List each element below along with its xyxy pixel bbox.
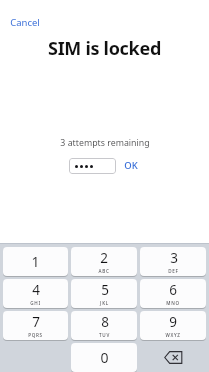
button[interactable]: 6 — [140, 279, 206, 308]
button[interactable]: 8 — [71, 311, 137, 340]
staticText: 8 — [101, 313, 109, 331]
staticText: OK — [124, 159, 138, 172]
staticText: SIM is locked — [48, 36, 161, 61]
button[interactable]: 9 — [140, 311, 206, 340]
button[interactable]: Backspace — [140, 343, 206, 372]
staticText: ABC — [98, 268, 110, 274]
staticText: Cancel — [10, 16, 40, 29]
button[interactable]: 4 — [3, 279, 68, 308]
button[interactable]: 1 — [3, 247, 68, 276]
button[interactable] — [69, 158, 116, 174]
button[interactable]: 0 — [71, 343, 137, 372]
staticText: 3 — [170, 249, 178, 267]
staticText: DEF — [168, 268, 179, 274]
staticText: WXYZ — [165, 332, 181, 338]
staticText: 4 — [32, 281, 40, 299]
staticText: 3 attempts remaining — [60, 137, 150, 149]
staticText: TUV — [99, 332, 110, 338]
staticText: 1 — [31, 252, 40, 271]
staticText: JKL — [100, 300, 109, 306]
button[interactable]: OK — [121, 157, 141, 174]
staticText: PQRS — [28, 332, 43, 338]
staticText: GHI — [30, 300, 41, 306]
staticText: 0 — [100, 348, 109, 367]
staticText: 9 — [169, 313, 177, 331]
button[interactable]: 2 — [71, 247, 137, 276]
staticText: 6 — [169, 281, 177, 299]
staticText: MNO — [166, 300, 180, 306]
button[interactable]: 3 — [140, 247, 206, 276]
staticText: 5 — [101, 281, 109, 299]
button[interactable]: 5 — [71, 279, 137, 308]
button[interactable]: 7 — [3, 311, 68, 340]
staticText: 7 — [32, 313, 40, 331]
staticText: 2 — [100, 249, 108, 267]
button[interactable]: Cancel — [7, 14, 43, 31]
